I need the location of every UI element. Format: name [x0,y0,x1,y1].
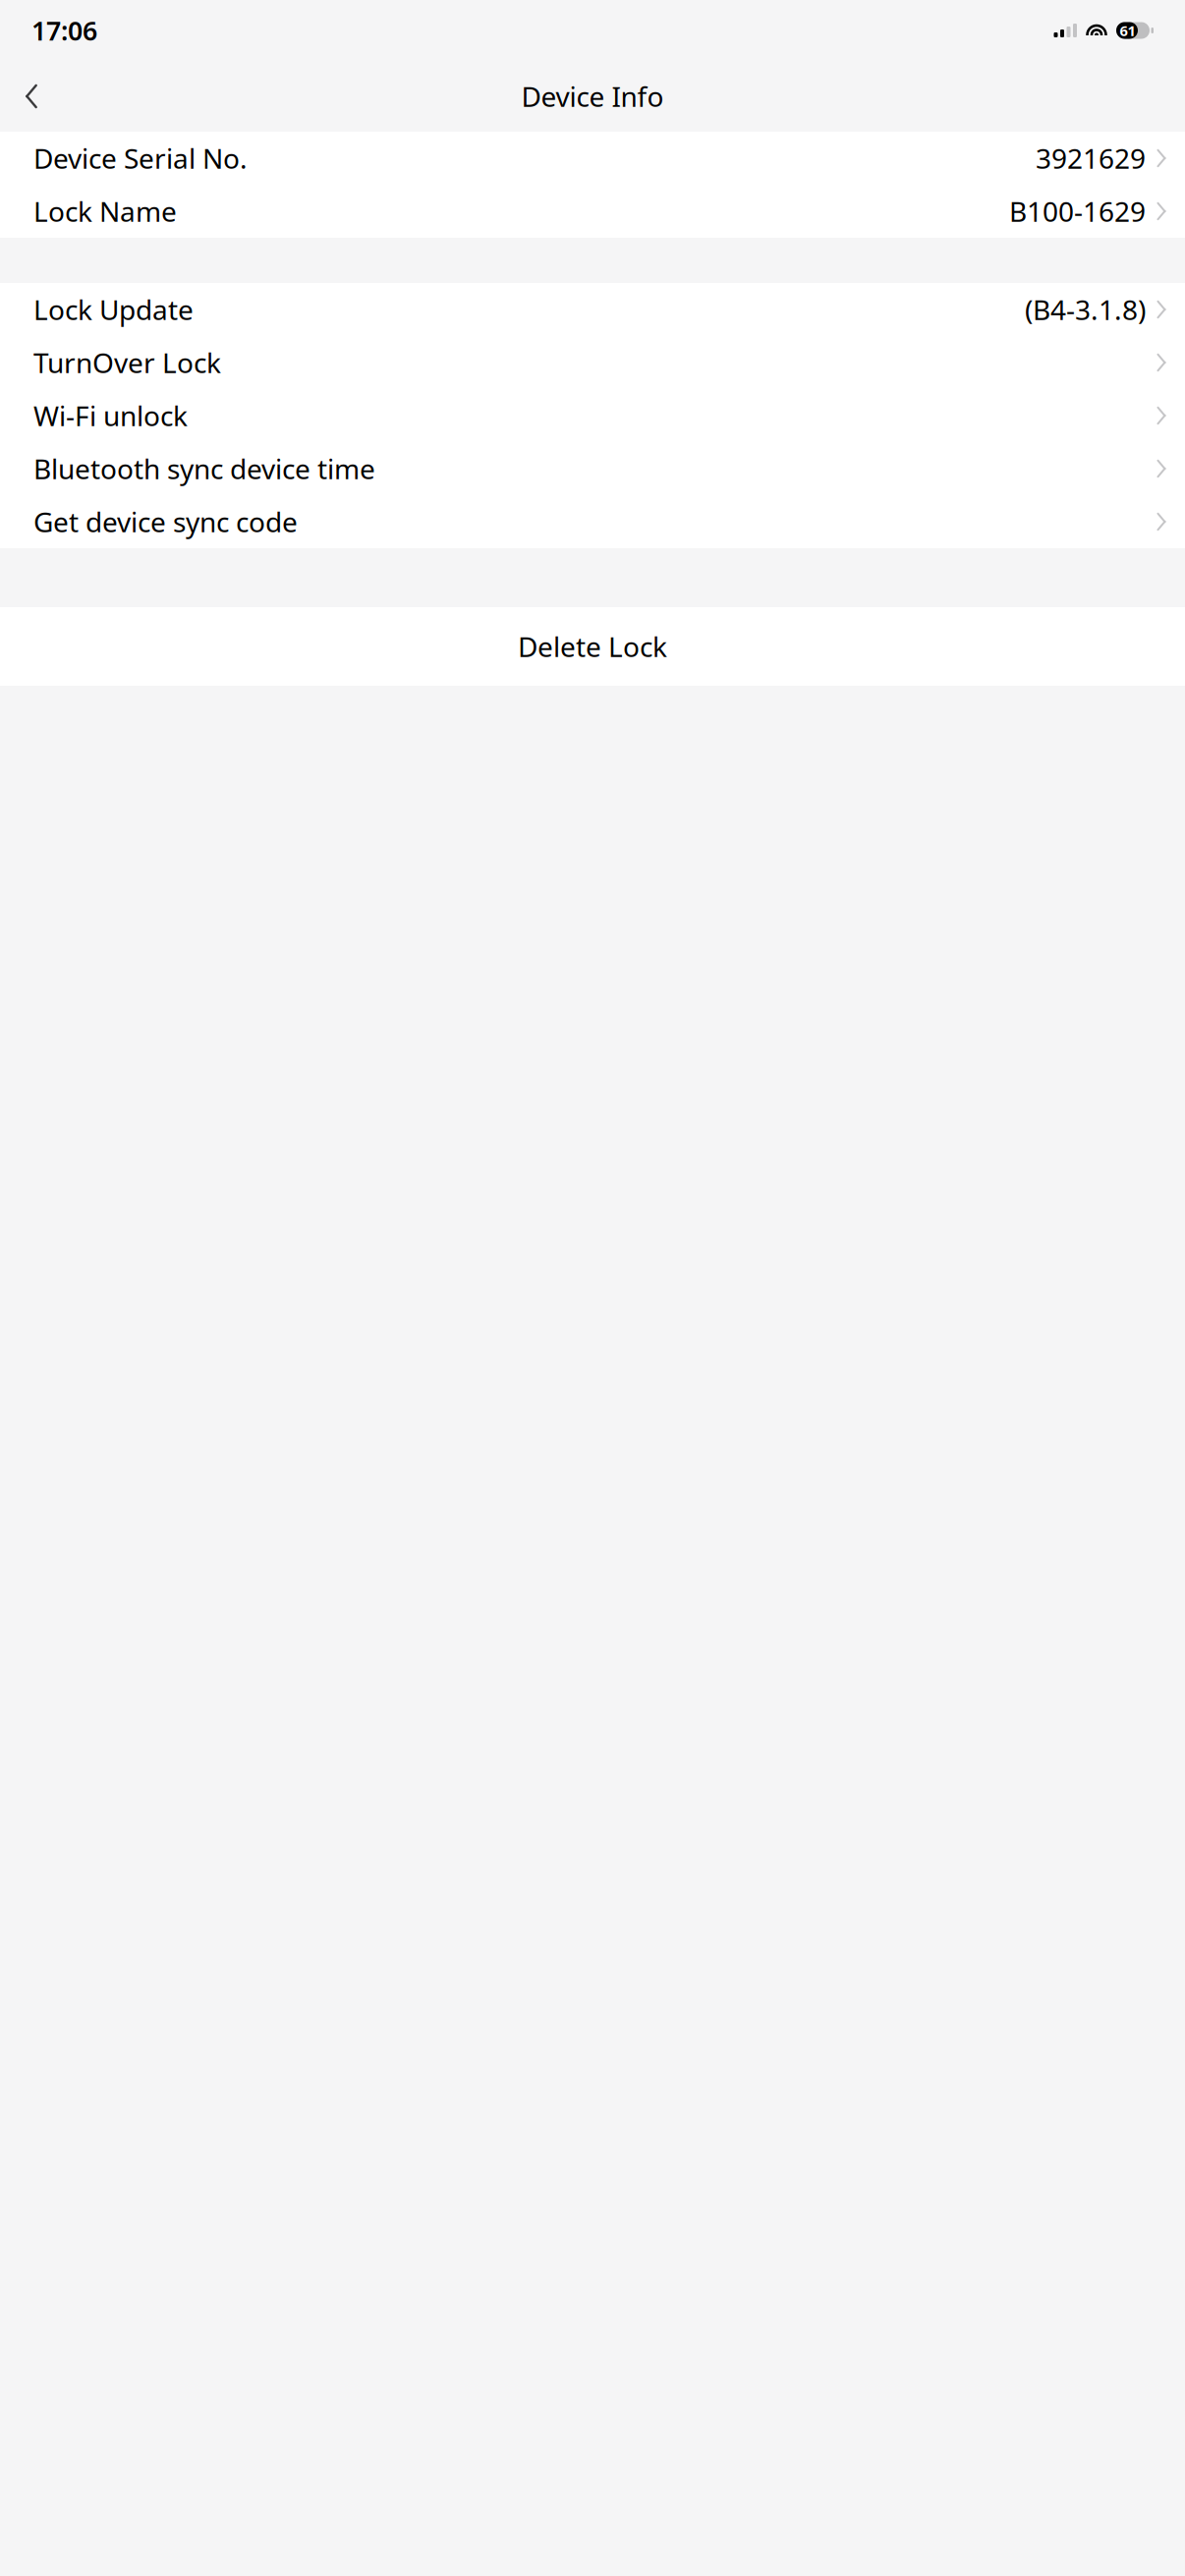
staticText: Get device sync code [33,503,298,540]
staticText: Lock Name [33,193,177,230]
staticText: (B4-3.1.8) [1025,291,1146,328]
staticText: Device Info [521,78,664,115]
button[interactable]: Lock Update [0,283,1185,336]
staticText: TurnOver Lock [33,344,221,381]
button[interactable]: Wi-Fi unlock [0,389,1185,442]
button[interactable]: Delete Lock [0,607,1185,686]
staticText: Bluetooth sync device time [33,450,375,487]
button[interactable]: TurnOver Lock [0,336,1185,389]
staticText: Delete Lock [518,628,667,665]
staticText: 61 [1120,21,1135,40]
button[interactable]: Lock Name [0,185,1185,238]
staticText: Wi-Fi unlock [33,397,188,434]
staticText: 3921629 [1036,140,1146,176]
staticText: Lock Update [33,291,194,328]
button[interactable]: Get device sync code [0,495,1185,548]
button[interactable]: Bluetooth sync device time [0,442,1185,495]
button[interactable]: Back [10,75,53,118]
staticText: Device Serial No. [33,140,248,176]
staticText: 17:06 [31,13,97,48]
staticText: B100-1629 [1009,193,1146,230]
button[interactable]: Device Serial No. [0,132,1185,185]
